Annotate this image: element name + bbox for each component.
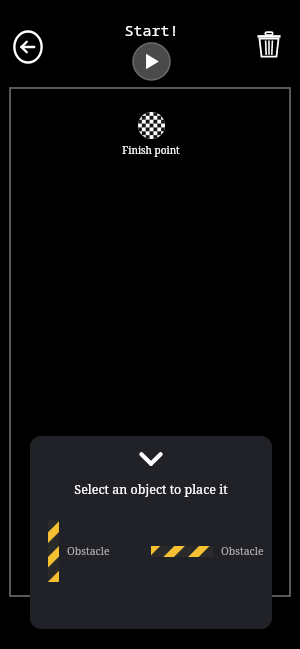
button[interactable]: Start! [121, 20, 181, 80]
button[interactable]: Delete [252, 28, 286, 62]
staticText: Select an object to place it [74, 481, 228, 498]
staticText: Obstacle [67, 544, 110, 558]
button[interactable]: Obstacle [30, 520, 151, 582]
button[interactable]: Back [10, 29, 46, 65]
staticText: Start! [124, 20, 179, 40]
staticText: Finish point [122, 143, 180, 157]
staticText: Obstacle [221, 544, 264, 558]
button[interactable]: Obstacle [151, 544, 272, 558]
button[interactable]: Collapse [131, 450, 171, 468]
